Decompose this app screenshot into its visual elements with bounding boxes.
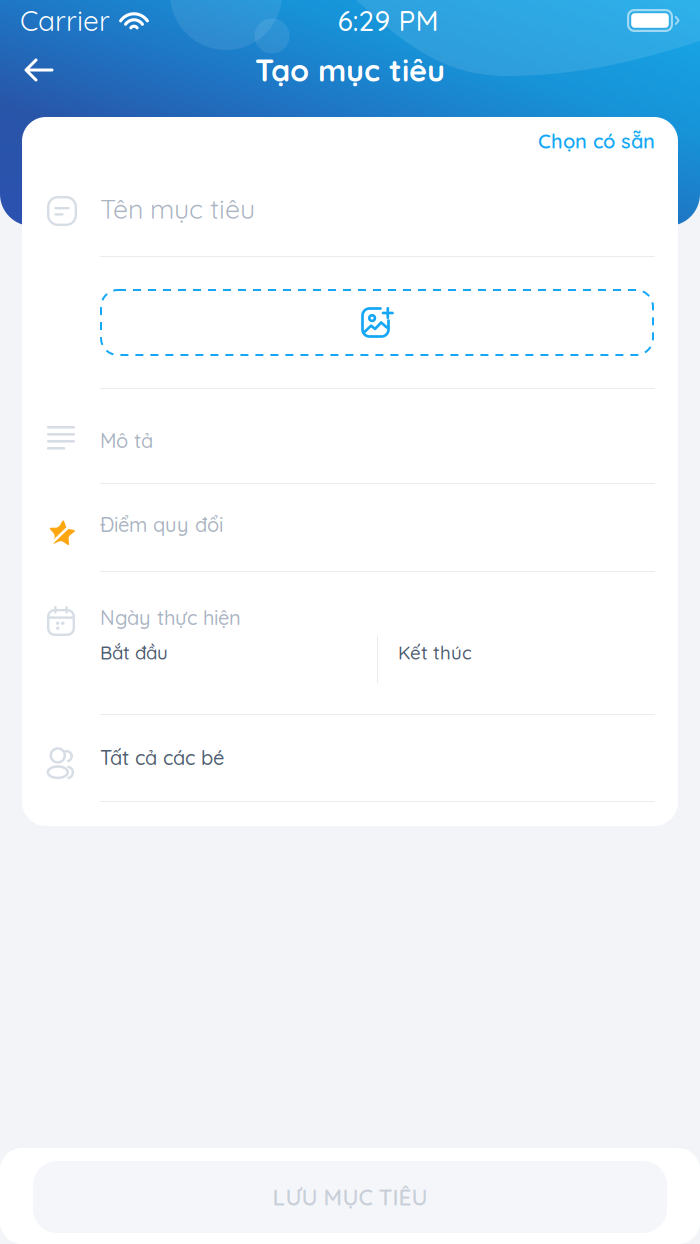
button[interactable]: Tất cả các bé bbox=[100, 745, 224, 770]
staticText: LƯU MỤC TIÊU bbox=[272, 1183, 427, 1211]
button[interactable]: LƯU MỤC TIÊU bbox=[33, 1161, 667, 1233]
staticText: Ngày thực hiện bbox=[100, 605, 241, 630]
button[interactable]: Bắt đầu bbox=[100, 636, 377, 683]
staticText: Carrier bbox=[20, 3, 110, 38]
staticText: Mô tả bbox=[100, 428, 153, 453]
staticText: Tất cả các bé bbox=[100, 745, 224, 770]
staticText: Chọn có sẵn bbox=[538, 128, 655, 153]
button[interactable]: Kết thúc bbox=[378, 636, 655, 683]
staticText: Tên mục tiêu bbox=[100, 192, 255, 225]
button[interactable]: Add photo bbox=[100, 289, 655, 356]
staticText: Điểm quy đổi bbox=[100, 512, 223, 537]
button[interactable]: Back bbox=[0, 41, 78, 99]
staticText: Bắt đầu bbox=[100, 641, 168, 664]
staticText: Tạo mục tiêu bbox=[255, 51, 445, 89]
button[interactable]: Chọn có sẵn bbox=[526, 119, 655, 162]
staticText: Kết thúc bbox=[398, 641, 472, 664]
staticText: 6:29 PM bbox=[337, 3, 438, 38]
